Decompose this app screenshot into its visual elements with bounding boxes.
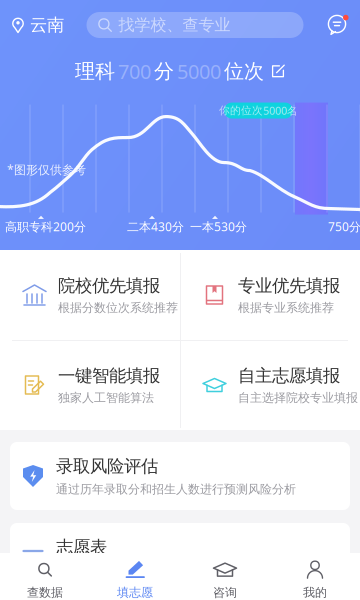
staticText: 5000 [177,58,221,85]
button[interactable]: 查数据 [0,553,90,600]
button[interactable]: 云南 [0,10,64,40]
staticText: 我的 [303,585,327,600]
button[interactable]: 消息 [326,14,350,36]
staticText: 理科 [75,59,115,84]
staticText: 查看已填报的志愿方案 [56,563,176,577]
staticText: 录取风险评估 [56,455,158,477]
staticText: 高职专科200分 [5,219,86,234]
staticText: 一键智能填报 [58,365,160,386]
staticText: 5000名 [263,103,298,118]
staticText: 750分 [328,219,360,234]
button[interactable]: 一键智能填报 [0,340,180,430]
staticText: 院校优先填报 [58,275,160,296]
staticText: 一本530分 [190,219,247,234]
button[interactable]: 自主志愿填报 [180,340,360,430]
staticText: 根据专业系统推荐 [238,300,334,315]
staticText: 自主志愿填报 [238,365,340,386]
staticText: 根据分数位次系统推荐 [58,300,178,315]
button[interactable]: 找学校、查专业 [86,12,303,38]
button[interactable]: 填志愿 [90,553,180,600]
button[interactable]: 我的 [270,553,360,600]
staticText: 通过历年录取分和招生人数进行预测风险分析 [56,482,296,496]
staticText: 志愿表 [56,536,107,558]
staticText: 自主选择院校专业填报 [238,390,358,405]
staticText: 独家人工智能算法 [58,390,154,405]
button[interactable]: 专业优先填报 [180,250,360,340]
button[interactable]: 咨询 [180,553,270,600]
staticText: 位次 [224,59,264,84]
staticText: 你的位次 [219,104,263,117]
staticText: 700 [118,58,151,85]
staticText: 咨询 [213,585,237,600]
staticText: 分 [154,59,174,84]
button[interactable]: 录取风险评估 [10,442,350,510]
button[interactable]: 志愿表 [10,523,350,591]
staticText: 云南 [30,14,64,36]
staticText: 二本430分 [127,219,184,234]
staticText: 找学校、查专业 [118,15,230,35]
staticText: 专业优先填报 [238,275,340,296]
staticText: *图形仅供参考 [7,162,86,177]
button[interactable]: 编辑分数 [267,64,285,78]
staticText: 填志愿 [117,585,153,600]
button[interactable]: 院校优先填报 [0,250,180,340]
staticText: 查数据 [27,585,63,600]
